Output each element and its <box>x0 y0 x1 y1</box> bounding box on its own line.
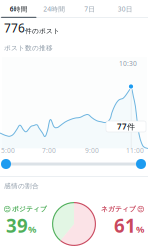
staticText: 5:00 <box>1 146 15 155</box>
staticText: 61% <box>114 213 144 238</box>
staticText: ポジティブ <box>12 205 47 213</box>
staticText: 6時間 <box>10 5 28 13</box>
staticText: 10:30 <box>119 59 137 68</box>
staticText: ポスト数の推移 <box>4 44 53 52</box>
button[interactable]: 7日 <box>72 0 107 18</box>
staticText: 776件のポスト <box>4 20 60 36</box>
staticText: 24時間 <box>43 5 65 13</box>
staticText: 39% <box>6 213 36 238</box>
staticText: 77件 <box>117 121 135 132</box>
staticText: 9:00 <box>85 146 99 155</box>
staticText: 30日 <box>118 5 133 13</box>
staticText: 感情の割合 <box>4 182 39 190</box>
button[interactable]: Range end <box>136 159 146 169</box>
staticText: 7:00 <box>42 146 56 155</box>
button[interactable]: Range start <box>1 159 11 169</box>
staticText: 7日 <box>84 5 95 13</box>
button[interactable]: 24時間 <box>36 0 72 18</box>
staticText: ネガティブ <box>101 205 136 213</box>
button[interactable]: 6時間 <box>1 0 36 18</box>
staticText: 11:00 <box>126 146 144 155</box>
button[interactable]: 30日 <box>107 0 143 18</box>
